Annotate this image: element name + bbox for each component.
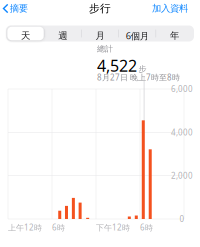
- staticText: 週: [58, 30, 67, 41]
- button[interactable]: 摘要: [0, 0, 28, 17]
- staticText: 0: [179, 214, 184, 224]
- staticText: 6,000: [171, 84, 193, 94]
- button[interactable]: 6個月: [119, 27, 155, 40]
- staticText: 總計: [97, 44, 113, 54]
- button[interactable]: 週: [44, 27, 81, 40]
- staticText: 4,000: [171, 127, 193, 138]
- staticText: 月: [95, 30, 104, 41]
- staticText: 8月27日 晚上7時至8時: [97, 72, 180, 83]
- staticText: 下午12時: [96, 222, 130, 233]
- staticText: 步: [138, 64, 146, 74]
- staticText: 6時: [52, 222, 65, 233]
- staticText: 6個月: [126, 29, 149, 42]
- staticText: 步行: [89, 2, 111, 15]
- staticText: 2,000: [171, 170, 193, 181]
- button[interactable]: 加入資料: [152, 0, 200, 17]
- staticText: 摘要: [10, 3, 28, 14]
- staticText: 上午12時: [8, 222, 42, 233]
- staticText: 年: [170, 30, 179, 41]
- staticText: 天: [21, 30, 30, 41]
- staticText: 6時: [140, 222, 153, 233]
- staticText: 加入資料: [152, 3, 188, 14]
- button[interactable]: 年: [156, 27, 193, 40]
- button[interactable]: 天: [7, 27, 44, 40]
- button[interactable]: 月: [82, 27, 118, 40]
- staticText: 4,522: [97, 55, 137, 76]
